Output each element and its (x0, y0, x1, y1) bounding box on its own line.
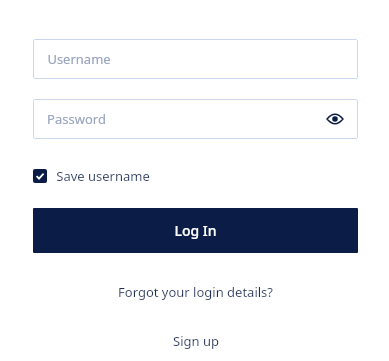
button[interactable]: Username (33, 39, 358, 79)
staticText: Save username (56, 167, 150, 185)
button[interactable]: Password (33, 99, 358, 139)
staticText: Sign up (173, 332, 219, 350)
staticText: Log In (174, 221, 217, 240)
button[interactable]: Sign up (167, 328, 225, 354)
staticText: Username (47, 50, 111, 68)
button[interactable]: Save username (33, 165, 150, 187)
button[interactable]: Log In (33, 208, 358, 253)
button[interactable]: Show password (324, 108, 346, 130)
staticText: Password (47, 110, 106, 128)
button[interactable]: Forgot your login details? (112, 279, 279, 305)
staticText: Forgot your login details? (118, 283, 273, 301)
